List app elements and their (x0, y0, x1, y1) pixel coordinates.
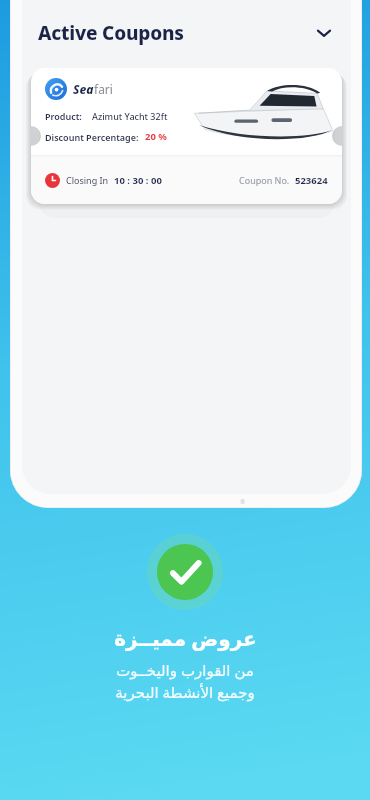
button[interactable]: Collapse Active Coupons (313, 22, 335, 44)
staticText: 523624 (295, 174, 328, 187)
staticText: Closing In (66, 174, 109, 186)
staticText: عروض مميــزة (114, 625, 257, 652)
staticText: Discount Percentage: (45, 131, 139, 143)
staticText: 10 : 30 : 00 (114, 174, 162, 187)
staticText: من القوارب واليخــوت (116, 660, 254, 680)
staticText: Sea (73, 81, 94, 97)
staticText: Coupon No. (239, 174, 290, 186)
staticText: وجميع الأنشطة البحرية (115, 682, 255, 702)
staticText: 20 % (145, 130, 167, 143)
button[interactable]: Sea (31, 68, 342, 204)
button[interactable]: Active Coupons (22, 16, 351, 50)
staticText: Azimut Yacht 32ft (92, 110, 168, 122)
staticText: fari (94, 81, 113, 97)
staticText: Product: (45, 110, 82, 122)
staticText: Active Coupons (38, 20, 184, 46)
